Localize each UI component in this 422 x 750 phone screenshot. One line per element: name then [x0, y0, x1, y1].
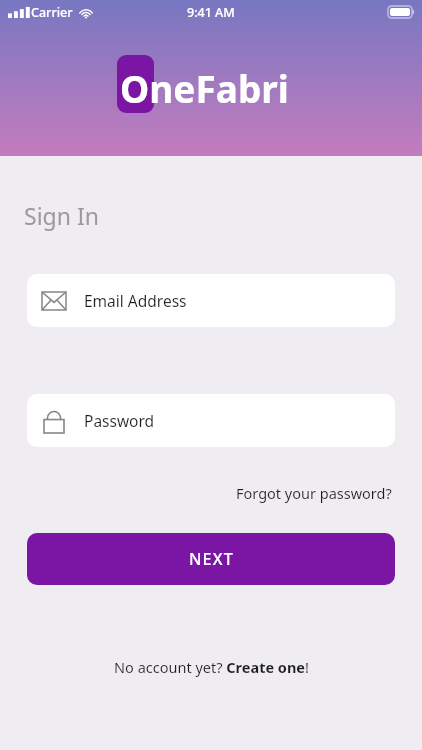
staticText: Forgot your password? — [236, 483, 392, 503]
button[interactable]: Email — [27, 274, 395, 327]
staticText: No account yet? Create one! — [114, 657, 309, 677]
staticText: Sign In — [24, 200, 99, 231]
button[interactable]: Forgot your password? — [234, 479, 394, 507]
other: Password — [44, 409, 64, 433]
staticText: Password — [84, 410, 155, 431]
staticText: Email Address — [84, 290, 187, 311]
staticText: OneFabric — [120, 63, 305, 115]
button[interactable]: No account yet? Create one! — [110, 653, 313, 681]
button[interactable]: Password — [27, 394, 395, 447]
other: Email — [42, 292, 66, 310]
staticText: NEXT — [189, 548, 234, 570]
staticText: Carrier — [31, 4, 73, 21]
button[interactable]: NEXT — [27, 533, 395, 585]
staticText: 9:41 AM — [187, 4, 235, 21]
